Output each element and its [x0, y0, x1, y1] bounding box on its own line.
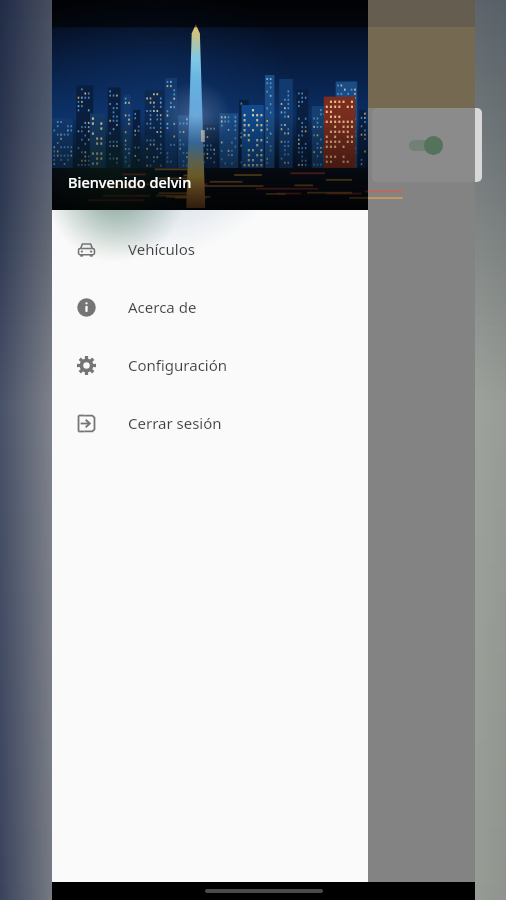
other: Home gesture	[205, 889, 323, 893]
button[interactable]	[372, 108, 482, 182]
staticText: Cerrar sesión	[128, 413, 222, 433]
staticText: Configuración	[128, 355, 228, 375]
button[interactable]: Configuración	[52, 336, 368, 394]
button[interactable]: Cerrar sesión	[52, 394, 368, 452]
button[interactable]: Vehículos	[52, 220, 368, 278]
staticText: Acerca de	[128, 297, 197, 317]
button[interactable]: Acerca de	[52, 278, 368, 336]
staticText: Bienvenido delvin	[68, 172, 192, 192]
staticText: Vehículos	[128, 239, 195, 259]
